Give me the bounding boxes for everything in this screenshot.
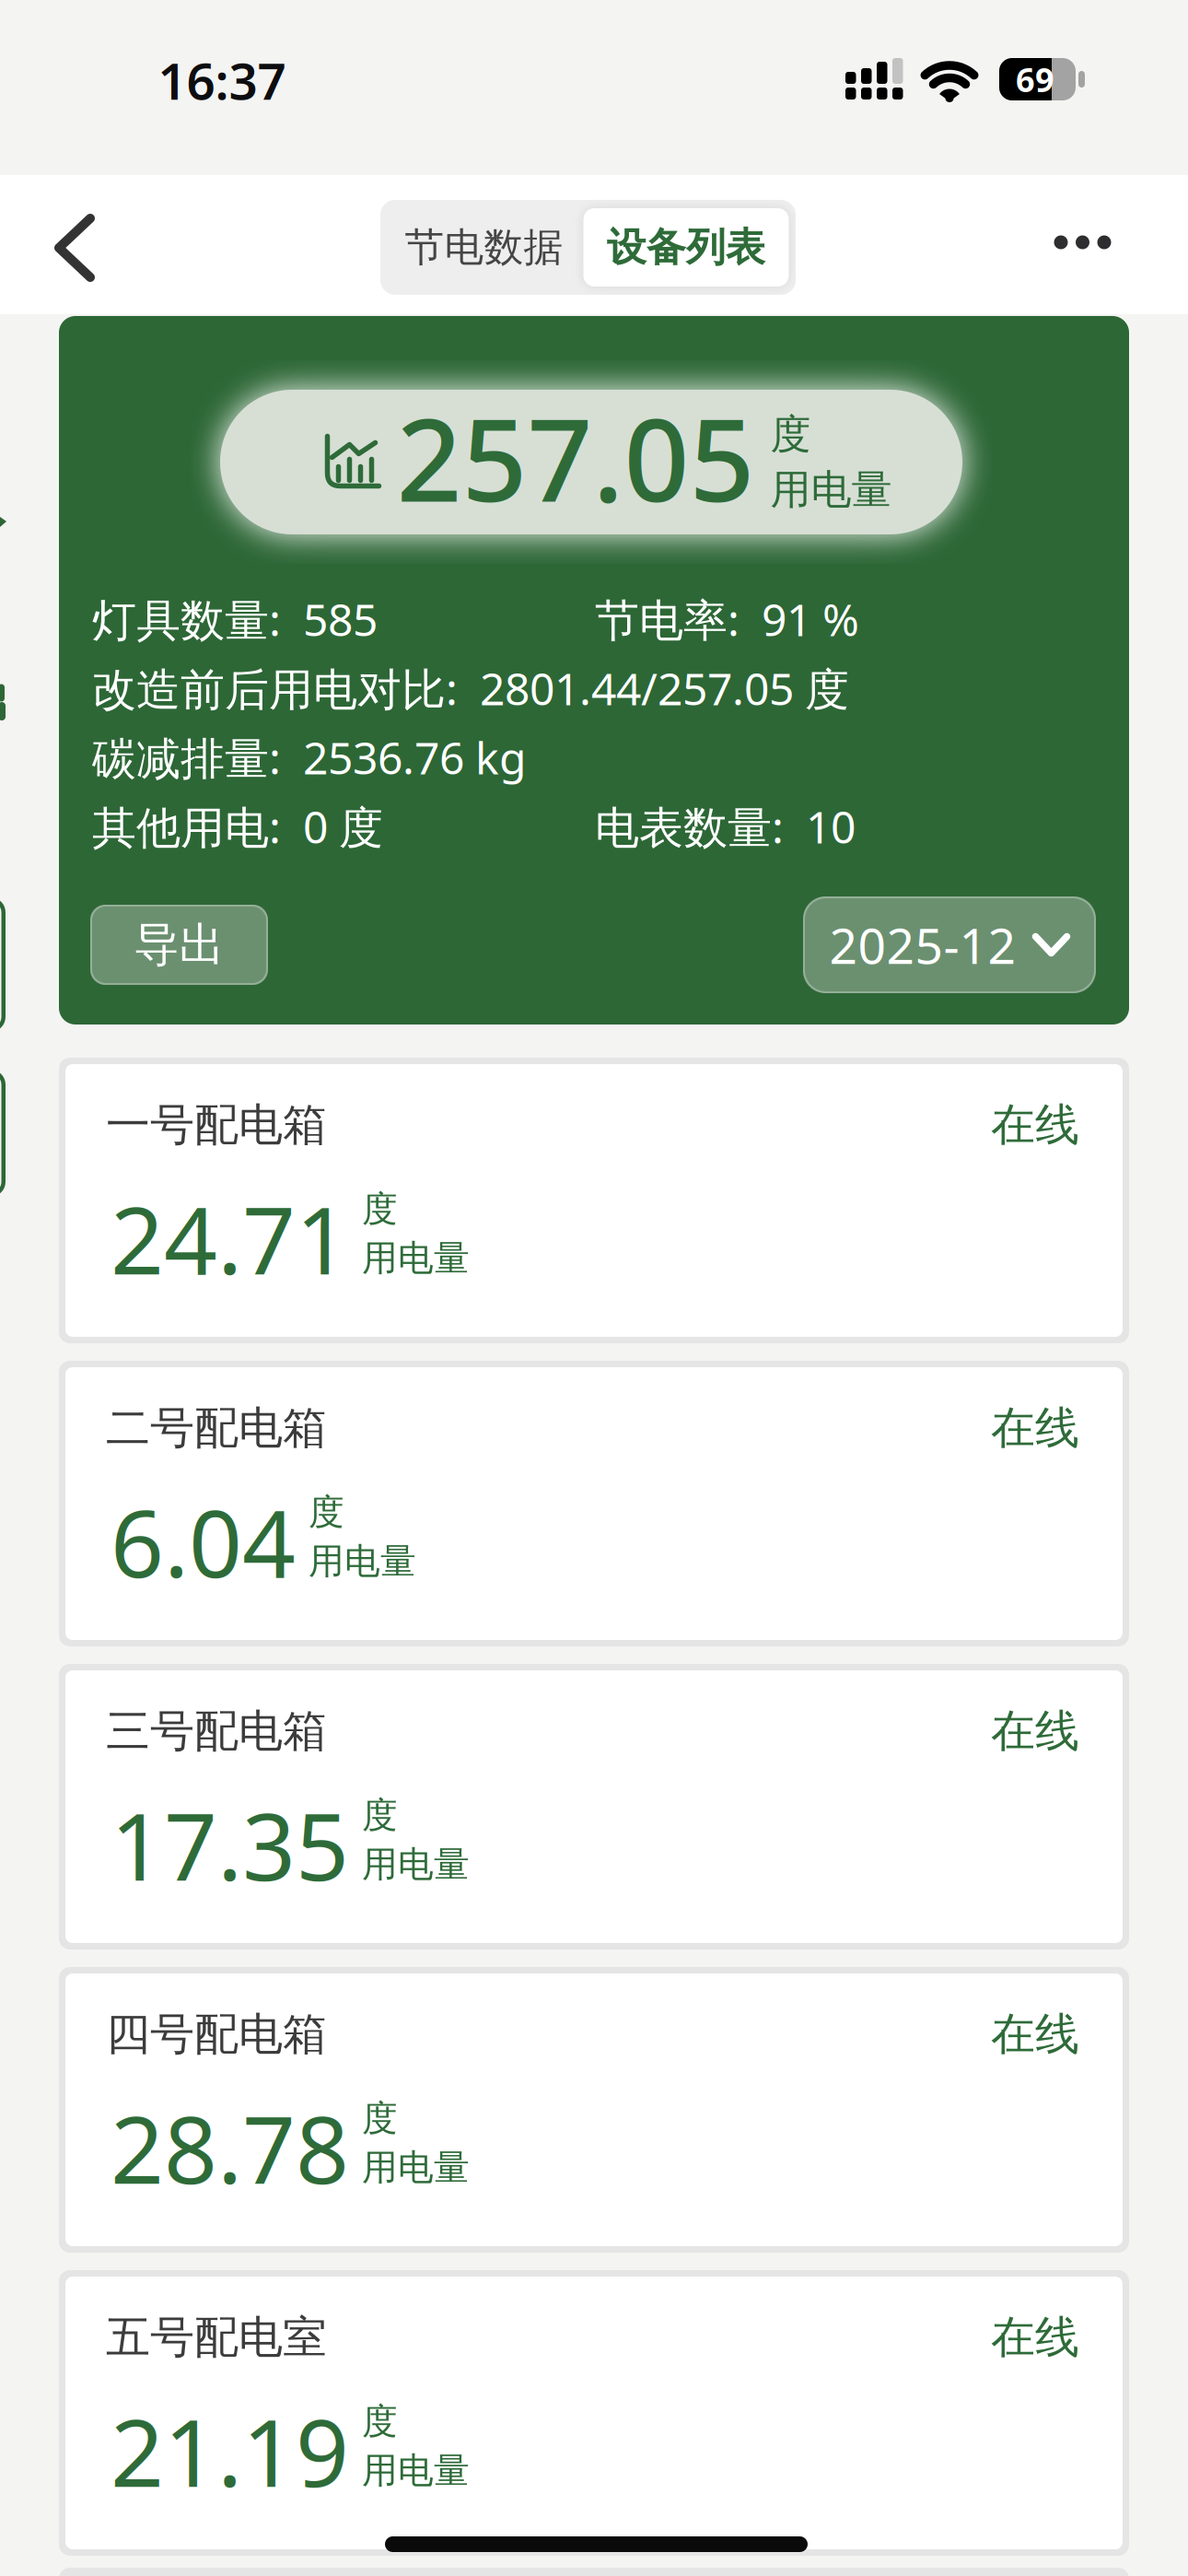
staticText: 改造前后用电对比: 2801.44/257.05 度 — [92, 659, 849, 718]
staticText: 在线 — [991, 1401, 1079, 1455]
staticText: 五号配电室 — [106, 2310, 327, 2365]
button[interactable]: 三号配电箱 — [59, 1664, 1129, 1950]
staticText: 69 — [1016, 57, 1054, 101]
staticText: 28.78 — [111, 2086, 349, 2210]
button[interactable]: 二号配电箱 — [59, 1361, 1129, 1646]
button[interactable]: 一号配电箱 — [59, 1058, 1129, 1343]
staticText: 用电量 — [362, 2449, 470, 2493]
staticText: 2025-12 — [829, 912, 1016, 977]
staticText: 在线 — [991, 1098, 1079, 1152]
staticText: 碳减排量: 2536.76 kg — [92, 728, 527, 787]
button[interactable]: 设备列表 — [588, 200, 796, 295]
staticText: 节电率: 91 % — [595, 590, 859, 648]
staticText: 节电数据 — [405, 223, 563, 272]
staticText: 度 — [362, 2400, 398, 2443]
staticText: 用电量 — [309, 1540, 416, 1583]
staticText: 四号配电箱 — [106, 2007, 327, 2061]
staticText: 257.05 — [396, 382, 755, 533]
button[interactable]: 节电数据 — [380, 200, 588, 295]
staticText: 导出 — [134, 917, 224, 973]
staticText: 二号配电箱 — [106, 1401, 327, 1455]
button[interactable]: Floating widget — [0, 897, 6, 1032]
staticText: 三号配电箱 — [106, 1704, 327, 1758]
staticText: 用电量 — [362, 1236, 470, 1280]
staticText: 用电量 — [362, 1843, 470, 1886]
staticText: 灯具数量: 585 — [92, 590, 378, 648]
staticText: 用电量 — [362, 2146, 470, 2190]
button[interactable]: 五号配电室 — [59, 2270, 1129, 2556]
staticText: 设备列表 — [607, 223, 765, 272]
button[interactable]: Floating widget — [0, 1070, 6, 1197]
staticText: 在线 — [991, 2007, 1079, 2061]
button[interactable]: More — [1032, 205, 1133, 279]
staticText: 一号配电箱 — [106, 1098, 327, 1152]
button[interactable]: 四号配电箱 — [59, 1967, 1129, 2253]
staticText: 16:37 — [158, 47, 286, 114]
staticText: 度 — [362, 2096, 398, 2140]
staticText: 度 — [362, 1793, 398, 1837]
staticText: 17.35 — [111, 1782, 349, 1906]
staticText: 度 — [770, 410, 811, 459]
staticText: 电表数量: 10 — [595, 797, 856, 856]
staticText: 度 — [362, 1187, 398, 1231]
button[interactable]: 导出 — [90, 905, 268, 985]
staticText: 在线 — [991, 2310, 1079, 2365]
staticText: 21.19 — [111, 2389, 349, 2513]
staticText: 其他用电: 0 度 — [92, 797, 383, 856]
staticText: 在线 — [991, 1704, 1079, 1758]
staticText: 24.71 — [111, 1176, 349, 1300]
staticText: 6.04 — [111, 1479, 296, 1603]
staticText: 度 — [309, 1490, 344, 1534]
staticText: 用电量 — [770, 465, 892, 515]
button[interactable]: Back — [29, 206, 103, 289]
button[interactable]: 2025-12 — [803, 896, 1096, 993]
